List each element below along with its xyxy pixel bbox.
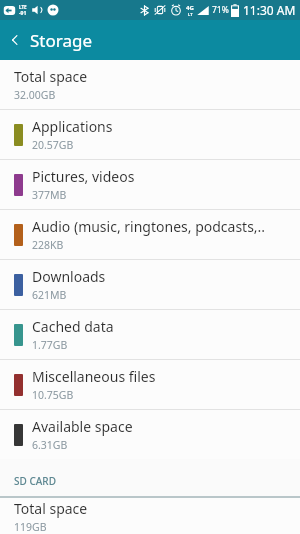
staticText: 71%: [212, 4, 229, 16]
button[interactable]: Miscellaneous files: [0, 360, 300, 409]
staticText: LT: [188, 12, 193, 17]
staticText: 377MB: [32, 188, 67, 202]
button[interactable]: Cached data: [0, 310, 300, 359]
staticText: Applications: [32, 117, 113, 136]
staticText: 1.77GB: [32, 338, 68, 352]
staticText: 6.31GB: [32, 438, 68, 452]
staticText: Storage: [30, 29, 93, 52]
staticText: Downloads: [32, 267, 106, 286]
staticText: 32.00GB: [14, 88, 56, 102]
staticText: Total space: [14, 499, 88, 518]
staticText: -91: [19, 10, 27, 17]
staticText: Cached data: [32, 317, 114, 336]
staticText: Available space: [32, 417, 133, 436]
staticText: Miscellaneous files: [32, 367, 156, 386]
button[interactable]: Applications: [0, 110, 300, 159]
button[interactable]: Total space: [0, 60, 300, 109]
staticText: 11:30 AM: [243, 2, 296, 18]
button[interactable]: Total space: [0, 498, 300, 534]
staticText: LTE: [19, 4, 27, 10]
staticText: 20.57GB: [32, 138, 74, 152]
button[interactable]: Audio (music, ringtones, podcasts,..: [0, 210, 300, 259]
staticText: 10.75GB: [32, 388, 74, 402]
button[interactable]: Downloads: [0, 260, 300, 309]
staticText: Total space: [14, 67, 88, 86]
button[interactable]: Back: [0, 20, 30, 60]
button[interactable]: Available space: [0, 410, 300, 459]
staticText: 621MB: [32, 288, 67, 302]
staticText: 228KB: [32, 238, 64, 252]
staticText: 119GB: [14, 520, 47, 534]
staticText: 4G: [186, 4, 194, 12]
staticText: Pictures, videos: [32, 167, 135, 186]
staticText: SD CARD: [14, 474, 56, 488]
staticText: Audio (music, ringtones, podcasts,..: [32, 217, 266, 236]
button[interactable]: Pictures, videos: [0, 160, 300, 209]
